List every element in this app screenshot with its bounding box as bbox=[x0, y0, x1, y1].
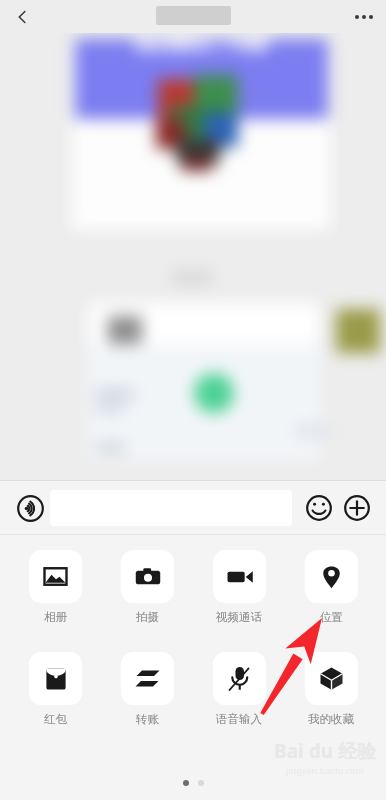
staticText: 转账 bbox=[136, 712, 159, 726]
staticText: 视频通话 bbox=[216, 610, 262, 624]
staticText: 低友信柄去く个细参 bbox=[134, 36, 270, 55]
button[interactable]: 拍摄 bbox=[110, 548, 184, 626]
staticText: 拍摄 bbox=[136, 610, 159, 624]
button[interactable]: 相册 bbox=[18, 548, 92, 626]
button[interactable]: More options bbox=[342, 0, 386, 33]
button[interactable]: Back bbox=[0, 0, 44, 33]
staticText: Bai du 经验 bbox=[274, 738, 376, 764]
staticText: 相册 bbox=[44, 610, 67, 624]
staticText: 语音输入 bbox=[216, 712, 262, 726]
button[interactable]: 我的收藏 bbox=[294, 650, 368, 728]
button[interactable]: 视频通话 bbox=[202, 548, 276, 626]
button[interactable]: Emoji bbox=[300, 489, 338, 527]
button[interactable]: 转账 bbox=[110, 650, 184, 728]
staticText: 位置 bbox=[320, 610, 343, 624]
staticText: 我的收藏 bbox=[308, 712, 354, 726]
button[interactable]: 位置 bbox=[294, 548, 368, 626]
button[interactable]: 语音输入 bbox=[202, 650, 276, 728]
button[interactable]: Voice message bbox=[10, 488, 50, 528]
button[interactable]: 红包 bbox=[18, 650, 92, 728]
staticText: jingyan.baidu.com bbox=[286, 764, 364, 776]
button[interactable]: More functions bbox=[338, 489, 376, 527]
staticText: 红包 bbox=[44, 712, 67, 726]
